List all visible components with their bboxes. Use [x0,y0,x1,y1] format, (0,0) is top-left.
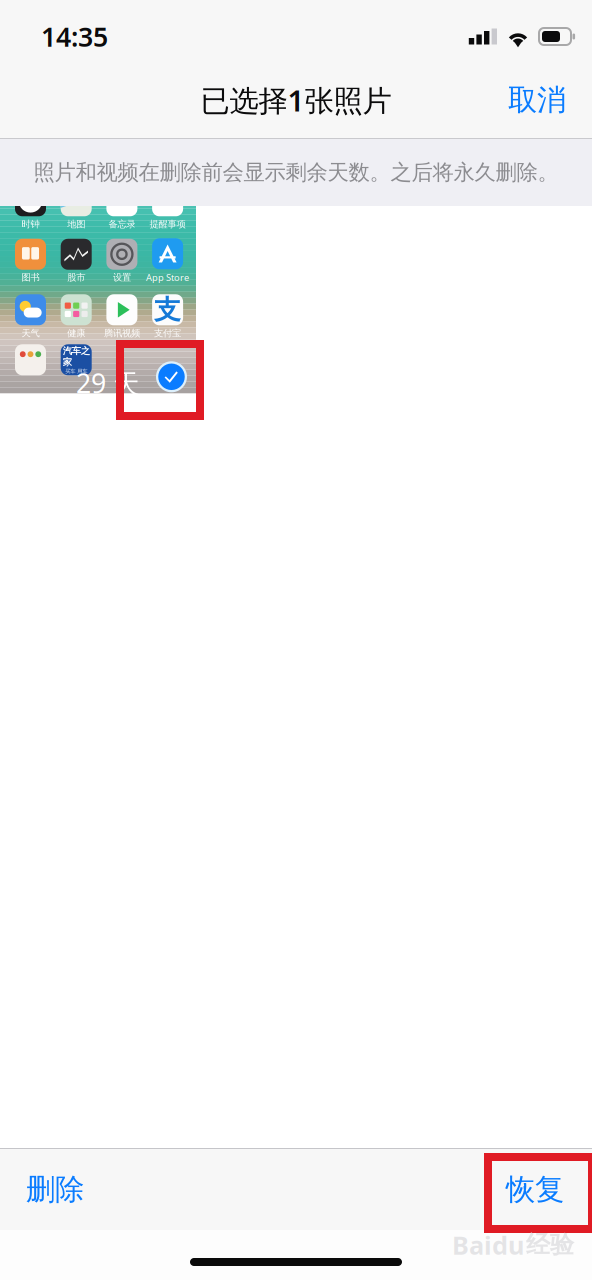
staticText: 股市 [67,272,85,283]
staticText: 提醒事项 [150,218,186,230]
button[interactable]: 取消 [496,72,578,128]
staticText: 照片和视频在删除前会显示剩余天数。之后将永久删除。 [33,159,558,186]
staticText: 取消 [508,82,566,118]
staticText: App Store [146,271,189,284]
staticText: 腾讯视频 [104,327,140,339]
staticText: 备忘录 [108,218,135,230]
staticText: 支 [154,293,181,326]
staticText: 时钟 [21,218,39,230]
staticText: 地图 [67,218,85,230]
staticText: 14:35 [41,19,108,54]
staticText: 图书 [21,272,39,283]
staticText: 健康 [67,327,85,339]
button[interactable]: 恢复 [492,1159,578,1219]
staticText: 删除 [26,1171,84,1207]
staticText: 已选择1张照片 [200,80,391,119]
staticText: 支付宝 [154,327,181,339]
button[interactable]: 删除 [12,1159,98,1219]
staticText: 设置 [113,272,131,283]
staticText: 29 天 [76,365,140,401]
staticText: 汽车之家 [63,345,90,368]
staticText: 恢复 [506,1171,564,1207]
staticText: 天气 [21,327,39,339]
staticText: Baidu [452,1228,524,1262]
staticText: 买车 用车 [65,368,87,375]
staticText: 经验 [526,1230,574,1260]
